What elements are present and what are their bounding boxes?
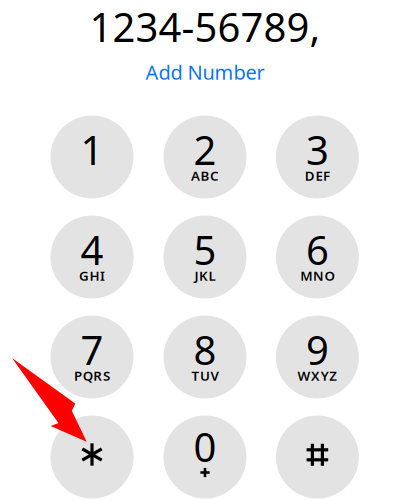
staticText: N bbox=[313, 267, 324, 284]
staticText: H bbox=[89, 267, 99, 284]
button[interactable]: 5 bbox=[163, 215, 246, 298]
staticText: Y bbox=[321, 367, 329, 384]
staticText: O bbox=[324, 267, 334, 284]
staticText: W bbox=[297, 367, 310, 384]
staticText: 3 bbox=[306, 123, 329, 176]
staticText: M bbox=[300, 267, 312, 284]
staticText: E bbox=[315, 167, 322, 184]
staticText: Add Number bbox=[145, 59, 264, 85]
staticText: 1234-56789, bbox=[89, 0, 320, 53]
staticText: G bbox=[79, 267, 89, 284]
staticText: 5 bbox=[193, 223, 216, 276]
button[interactable]: 0 bbox=[163, 415, 246, 498]
button[interactable]: 6 bbox=[276, 215, 359, 298]
staticText: T bbox=[191, 367, 199, 384]
staticText: U bbox=[200, 367, 210, 384]
button[interactable]: 2 bbox=[163, 115, 246, 198]
button[interactable] bbox=[276, 415, 359, 498]
staticText: A bbox=[191, 167, 200, 184]
staticText: Q bbox=[83, 367, 93, 384]
staticText: D bbox=[305, 167, 315, 184]
staticText: C bbox=[210, 167, 219, 184]
staticText: F bbox=[323, 167, 330, 184]
staticText: X bbox=[311, 367, 320, 384]
button[interactable]: Add Number bbox=[135, 54, 274, 90]
button[interactable]: 1 bbox=[50, 115, 133, 198]
button[interactable] bbox=[50, 415, 133, 498]
staticText: R bbox=[93, 367, 102, 384]
staticText: I bbox=[100, 267, 105, 284]
staticText: J bbox=[194, 267, 198, 284]
button[interactable]: 7 bbox=[50, 315, 133, 398]
staticText: K bbox=[199, 267, 208, 284]
staticText: V bbox=[211, 367, 219, 384]
staticText: 0 bbox=[193, 420, 216, 473]
staticText: 7 bbox=[80, 323, 103, 376]
staticText: 6 bbox=[306, 223, 329, 276]
staticText: L bbox=[209, 267, 216, 284]
staticText: 8 bbox=[193, 323, 216, 376]
staticText: P bbox=[74, 367, 82, 384]
staticText: 2 bbox=[193, 123, 216, 176]
staticText: B bbox=[200, 167, 209, 184]
staticText: 4 bbox=[80, 223, 103, 276]
staticText: 9 bbox=[306, 323, 329, 376]
button[interactable]: 4 bbox=[50, 215, 133, 298]
staticText: S bbox=[103, 367, 110, 384]
button[interactable]: 8 bbox=[163, 315, 246, 398]
staticText: 1 bbox=[80, 123, 103, 176]
button[interactable]: 9 bbox=[276, 315, 359, 398]
button[interactable]: 3 bbox=[276, 115, 359, 198]
staticText: Z bbox=[329, 367, 337, 384]
